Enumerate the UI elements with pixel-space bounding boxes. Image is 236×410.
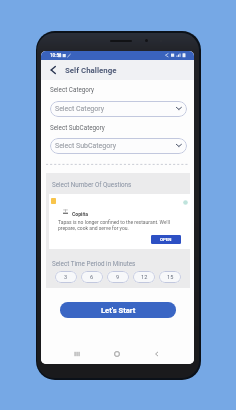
button[interactable]: OPEN bbox=[151, 235, 181, 244]
staticText: Select Number Of Questions bbox=[52, 181, 132, 188]
button[interactable]: 3 bbox=[55, 271, 77, 283]
staticText: 9 bbox=[116, 274, 120, 281]
button[interactable]: 9 bbox=[107, 271, 129, 283]
staticText: 3 bbox=[64, 274, 68, 281]
staticText: 15 bbox=[167, 274, 174, 281]
button[interactable]: 6 bbox=[81, 271, 103, 283]
staticText: Select SubCategory bbox=[55, 142, 116, 150]
staticText: Select Time Period in Minutes bbox=[52, 260, 136, 267]
staticText: 10:51 bbox=[50, 53, 62, 58]
button[interactable]: Back bbox=[47, 63, 61, 77]
other: Back bbox=[154, 351, 160, 357]
button[interactable]: 15 bbox=[159, 271, 181, 283]
staticText: Select Category bbox=[55, 105, 105, 113]
button[interactable]: Select Category bbox=[50, 101, 187, 117]
other: Recents bbox=[74, 351, 80, 357]
button[interactable]: Let's Start bbox=[60, 302, 176, 318]
staticText: Tapas is no longer confined to the resta… bbox=[58, 219, 170, 231]
staticText: Let's Start bbox=[101, 306, 136, 315]
other: Home bbox=[114, 351, 120, 357]
staticText: 6 bbox=[90, 274, 94, 281]
button[interactable]: Select SubCategory bbox=[50, 138, 187, 154]
staticText: Self Challenge bbox=[65, 66, 117, 75]
staticText: Copiña bbox=[72, 211, 89, 217]
staticText: OPEN bbox=[160, 237, 172, 242]
staticText: 12 bbox=[141, 274, 148, 281]
button[interactable]: 12 bbox=[133, 271, 155, 283]
staticText: Select SubCategory bbox=[50, 124, 105, 131]
staticText: Select Category bbox=[50, 86, 95, 93]
